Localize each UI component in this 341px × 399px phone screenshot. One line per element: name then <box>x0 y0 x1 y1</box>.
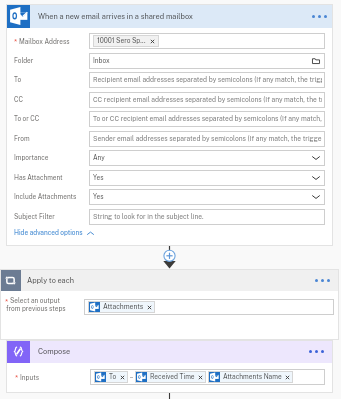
staticText: To or CC <box>14 115 40 123</box>
button[interactable]: Apply to each <box>0 269 339 291</box>
staticText: Include Attachments <box>14 193 77 201</box>
staticText: Select an output <box>10 297 60 305</box>
button[interactable]: When a new email arrives in a shared mai… <box>6 4 333 28</box>
staticText: Importance <box>14 154 49 162</box>
staticText: 10001 Sero Sp... <box>97 37 146 45</box>
staticText: * <box>14 36 18 45</box>
staticText: Attachments Name <box>223 373 282 381</box>
button[interactable]: Attachments <box>88 301 155 313</box>
staticText: Attachments <box>103 303 144 311</box>
staticText: Inbox <box>93 57 110 65</box>
staticText: Yes <box>93 174 104 182</box>
staticText: CC recipient email addresses separated b… <box>93 96 322 104</box>
staticText: From <box>14 135 30 143</box>
staticText: * <box>15 372 19 381</box>
staticText: Has Attachment <box>14 174 63 182</box>
staticText: Received Time <box>150 373 195 381</box>
staticText: * <box>5 296 9 305</box>
staticText: CC <box>14 96 23 104</box>
staticText: Yes <box>93 193 104 201</box>
button[interactable]: Compose <box>6 340 333 363</box>
button[interactable]: Received Time <box>135 371 206 383</box>
staticText: Apply to each <box>27 276 74 285</box>
staticText: Folder <box>14 57 34 65</box>
staticText: Mailbox Address <box>19 38 70 46</box>
button[interactable]: More options <box>315 279 330 282</box>
button[interactable]: 10001 Sero Sp... <box>93 35 159 47</box>
staticText: When a new email arrives in a shared mai… <box>38 12 194 21</box>
button[interactable]: To <box>94 371 128 383</box>
staticText: Compose <box>38 347 71 356</box>
staticText: To <box>109 373 117 381</box>
staticText: Recipient email addresses separated by s… <box>93 76 322 84</box>
staticText: Subject Filter <box>14 213 55 221</box>
button[interactable]: Attachments Name <box>208 371 293 383</box>
staticText: Any <box>93 154 105 162</box>
staticText: Sender email addresses separated by semi… <box>93 135 322 143</box>
staticText: from previous steps <box>6 305 66 313</box>
button[interactable]: More options <box>312 15 327 18</box>
staticText: To or CC recipient email addresses separ… <box>93 115 322 123</box>
button[interactable]: More options <box>309 350 324 353</box>
staticText: Inputs <box>20 374 40 382</box>
button[interactable]: Hide advanced options <box>14 229 94 237</box>
staticText: To <box>14 76 22 84</box>
staticText: String to look for in the subject line. <box>93 213 204 221</box>
staticText: Hide advanced options <box>14 229 83 237</box>
